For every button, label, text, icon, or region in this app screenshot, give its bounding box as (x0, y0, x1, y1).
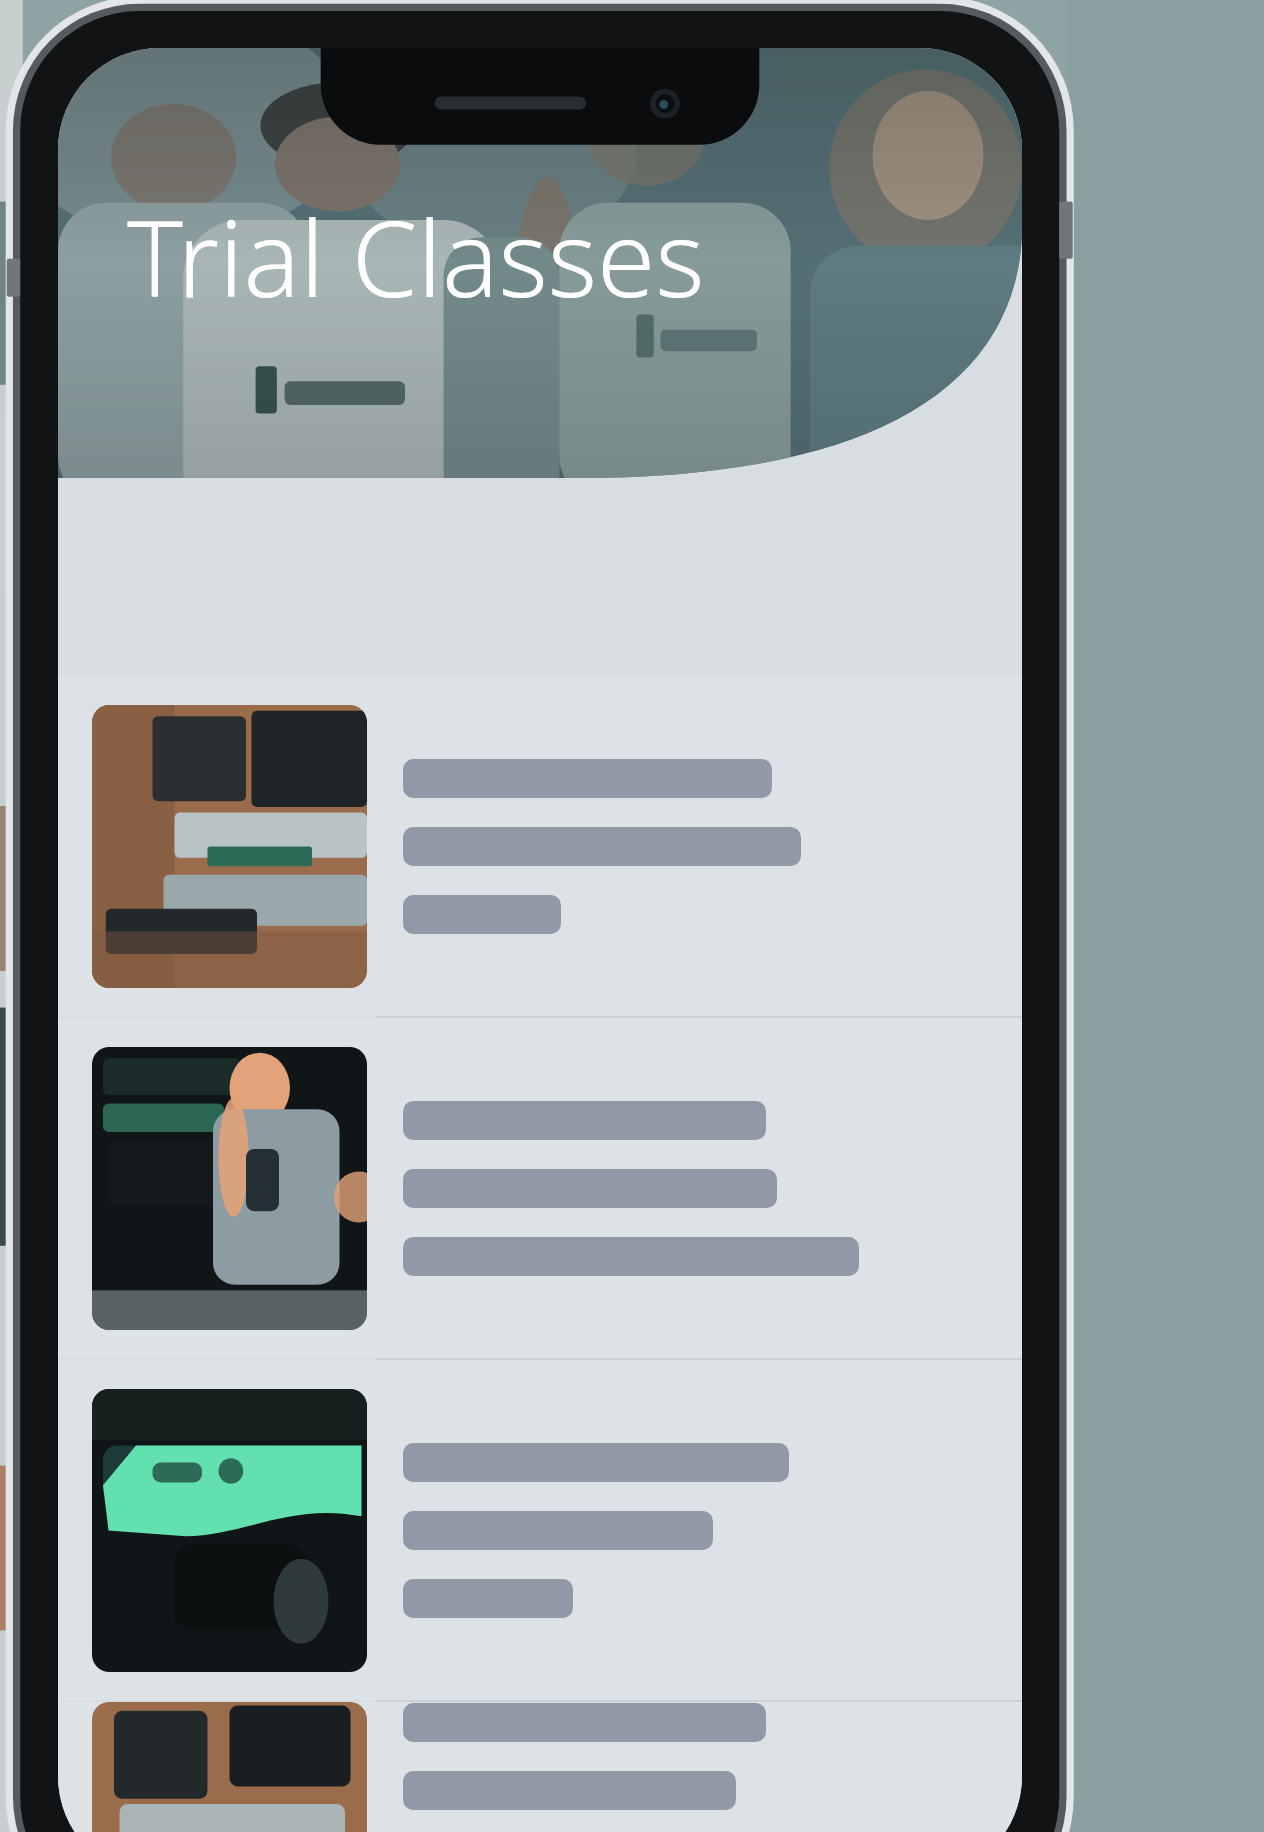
button[interactable] (58, 676, 1022, 1016)
button[interactable] (58, 1018, 1022, 1358)
button[interactable] (58, 1360, 1022, 1700)
button[interactable] (58, 1702, 1022, 1832)
staticText: Trial Classes (127, 184, 705, 328)
other: Trial Classes header (58, 48, 1022, 478)
